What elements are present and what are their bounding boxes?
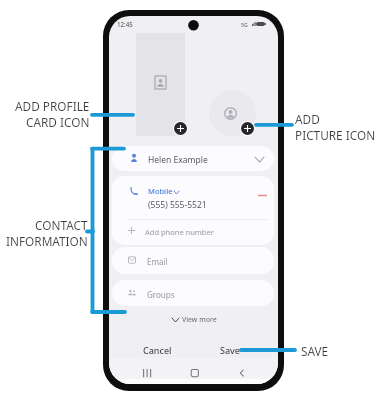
staticText: SAVE xyxy=(301,343,329,359)
button[interactable]: Back xyxy=(234,365,250,381)
button[interactable]: Home xyxy=(187,365,203,381)
staticText: 12:45 xyxy=(117,20,133,28)
staticText: (555) 555-5521 xyxy=(148,199,207,211)
button[interactable]: Save xyxy=(217,342,244,358)
button[interactable]: Email xyxy=(112,247,274,274)
button[interactable]: Groups xyxy=(112,280,274,306)
button[interactable]: Profile card xyxy=(136,33,185,136)
staticText: CONTACT xyxy=(35,217,88,233)
button[interactable]: Mobile xyxy=(112,176,274,219)
button[interactable]: Add picture xyxy=(240,121,255,136)
staticText: Save xyxy=(220,344,241,356)
staticText: Cancel xyxy=(143,344,172,356)
button[interactable]: Recent apps xyxy=(139,365,155,381)
staticText: Helen Example xyxy=(148,154,208,166)
staticText: INFORMATION xyxy=(6,233,88,249)
staticText: PICTURE ICON xyxy=(295,127,376,143)
staticText: View more xyxy=(182,315,217,325)
staticText: 5G xyxy=(241,21,248,28)
button[interactable]: Helen Example xyxy=(112,146,274,171)
button[interactable]: Add profile card xyxy=(173,121,188,136)
button[interactable]: Add phone number xyxy=(112,219,274,245)
staticText: ADD xyxy=(295,111,320,127)
staticText: Email xyxy=(147,256,168,267)
button[interactable]: Cancel xyxy=(139,342,176,358)
staticText: ADD PROFILE xyxy=(15,98,90,114)
staticText: CARD ICON xyxy=(26,114,90,130)
button[interactable]: View more xyxy=(172,312,220,327)
staticText: Groups xyxy=(147,289,175,300)
staticText: Mobile xyxy=(148,186,173,196)
staticText: Add phone number xyxy=(145,227,214,237)
button[interactable]: Remove phone number xyxy=(254,189,270,201)
